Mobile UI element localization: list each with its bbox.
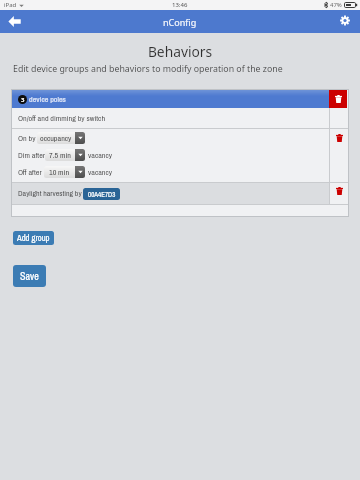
staticText: 00A4E7D3 xyxy=(88,190,116,199)
button[interactable]: Add group xyxy=(13,231,54,245)
staticText: Daylight harvesting by xyxy=(18,188,82,199)
button[interactable]: Save xyxy=(13,265,46,287)
staticText: Dim after xyxy=(18,150,45,161)
staticText: vacancy xyxy=(88,167,113,178)
button[interactable]: 10 min xyxy=(44,166,85,178)
button[interactable]: Delete behavior xyxy=(330,129,348,182)
button[interactable]: Settings xyxy=(334,10,360,33)
staticText: On by xyxy=(18,133,36,144)
staticText: Edit device groups and behaviors to modi… xyxy=(13,63,283,75)
button[interactable]: 3 xyxy=(12,90,329,108)
button[interactable]: occupancy xyxy=(37,132,85,144)
staticText: Save xyxy=(20,270,39,283)
staticText: 13:46 xyxy=(172,1,188,9)
button[interactable]: 7.5 min xyxy=(45,149,85,161)
staticText: nConfig xyxy=(163,16,197,28)
button[interactable]: Back xyxy=(0,10,28,33)
staticText: Off after xyxy=(18,167,42,178)
button[interactable]: 00A4E7D3 xyxy=(83,188,120,200)
staticText: vacancy xyxy=(88,150,113,161)
staticText: 3 xyxy=(21,96,25,104)
staticText: Behaviors xyxy=(0,42,360,61)
staticText: On/off and dimming by switch xyxy=(18,113,106,124)
staticText: 7.5 min xyxy=(49,150,71,161)
staticText: occupancy xyxy=(40,133,72,144)
staticText: device poles xyxy=(29,94,66,105)
staticText: 10 min xyxy=(49,167,70,178)
staticText: iPad xyxy=(4,1,17,9)
button[interactable]: Delete group xyxy=(329,90,347,108)
staticText: 47% xyxy=(330,1,342,9)
button[interactable]: Delete daylight behavior xyxy=(330,183,348,204)
staticText: Add group xyxy=(17,232,50,244)
